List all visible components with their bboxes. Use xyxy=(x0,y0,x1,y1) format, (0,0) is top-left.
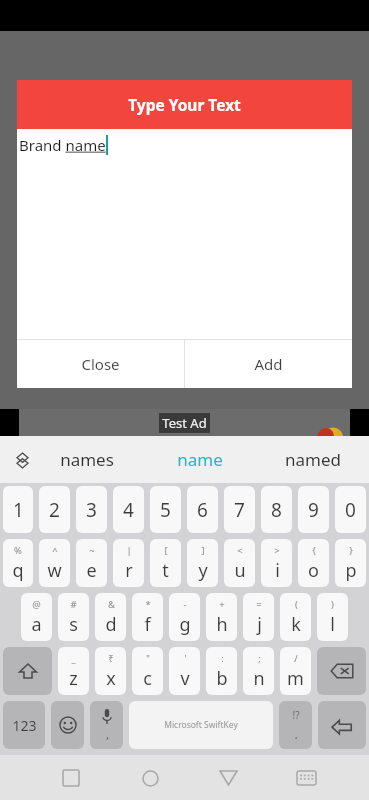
staticText: = xyxy=(256,598,262,611)
staticText: e xyxy=(86,558,97,583)
staticText: names xyxy=(60,448,114,471)
staticText: Add xyxy=(254,354,283,374)
button[interactable]: @ xyxy=(21,593,52,641)
button[interactable]: names xyxy=(30,436,143,483)
staticText: h xyxy=(216,612,228,637)
staticText: s xyxy=(69,612,78,637)
staticText: a xyxy=(31,612,42,637)
staticText: q xyxy=(12,558,24,583)
button[interactable]: _ xyxy=(58,647,89,695)
button[interactable]: Enter xyxy=(318,701,366,749)
button[interactable]: Expand suggestions xyxy=(9,447,35,473)
button[interactable]: + xyxy=(206,593,237,641)
button[interactable]: 9 xyxy=(298,486,329,533)
button[interactable]: ) xyxy=(317,593,348,641)
button[interactable]: named xyxy=(256,436,369,483)
staticText: n xyxy=(253,666,265,691)
button[interactable]: Test Ad xyxy=(0,409,369,436)
button[interactable]: name xyxy=(143,436,256,483)
button[interactable]: Recents xyxy=(49,756,93,800)
button[interactable]: Emoji xyxy=(51,701,84,749)
button[interactable]: Voice input xyxy=(90,701,123,749)
staticText: , xyxy=(106,727,109,742)
button[interactable]: 0 xyxy=(335,486,366,533)
button[interactable]: : xyxy=(206,647,237,695)
staticText: % xyxy=(14,544,22,557)
button[interactable]: { xyxy=(298,539,329,587)
button[interactable]: > xyxy=(261,539,292,587)
staticText: r xyxy=(125,558,133,583)
staticText: named xyxy=(285,448,341,471)
button[interactable]: ₹ xyxy=(95,647,126,695)
button[interactable]: 3 xyxy=(76,486,107,533)
button[interactable]: 7 xyxy=(224,486,255,533)
button[interactable]: ' xyxy=(169,647,200,695)
button[interactable]: 6 xyxy=(187,486,218,533)
button[interactable]: [ xyxy=(150,539,181,587)
button[interactable]: 4 xyxy=(113,486,144,533)
button[interactable]: !? xyxy=(279,701,312,749)
staticText: ' xyxy=(184,652,187,665)
staticText: ₹ xyxy=(108,652,114,665)
staticText: x xyxy=(106,666,116,691)
button[interactable]: 8 xyxy=(261,486,292,533)
staticText: 4 xyxy=(123,497,134,523)
button[interactable]: Backspace xyxy=(317,647,366,695)
button[interactable]: 1 xyxy=(3,486,33,533)
staticText: l xyxy=(330,612,335,637)
staticText: ( xyxy=(295,598,298,611)
staticText: } xyxy=(349,544,353,557)
button[interactable]: Home xyxy=(128,756,172,800)
button[interactable]: ; xyxy=(243,647,274,695)
button[interactable]: Back xyxy=(206,756,250,800)
staticText: Microsoft SwiftKey xyxy=(164,719,238,731)
button[interactable]: " xyxy=(132,647,163,695)
button[interactable]: Space xyxy=(129,701,273,749)
button[interactable]: Close xyxy=(17,340,184,388)
button[interactable]: Brand name xyxy=(17,129,352,339)
staticText: !? xyxy=(292,708,300,722)
staticText: [ xyxy=(164,544,168,557)
button[interactable]: 123 xyxy=(3,701,45,749)
staticText: d xyxy=(105,612,117,637)
staticText: _ xyxy=(71,652,76,665)
button[interactable]: | xyxy=(113,539,144,587)
button[interactable]: 5 xyxy=(150,486,181,533)
button[interactable]: ~ xyxy=(76,539,107,587)
button[interactable]: Add xyxy=(185,340,352,388)
staticText: 7 xyxy=(234,497,245,523)
staticText: i xyxy=(275,558,280,583)
staticText: Close xyxy=(81,354,120,374)
staticText: 9 xyxy=(308,497,319,523)
staticText: 0 xyxy=(345,497,356,523)
button[interactable]: < xyxy=(224,539,255,587)
staticText: f xyxy=(144,612,151,637)
button[interactable]: Hide keyboard xyxy=(284,756,328,800)
staticText: m xyxy=(287,666,304,691)
button[interactable]: = xyxy=(243,593,274,641)
button[interactable]: 2 xyxy=(39,486,70,533)
staticText: t xyxy=(162,558,169,583)
staticText: v xyxy=(180,666,190,691)
staticText: ; xyxy=(258,652,261,665)
staticText: # xyxy=(70,598,77,611)
button[interactable]: # xyxy=(58,593,89,641)
button[interactable]: - xyxy=(169,593,200,641)
staticText: ~ xyxy=(89,544,95,557)
staticText: j xyxy=(257,612,262,637)
staticText: { xyxy=(312,544,316,557)
button[interactable]: / xyxy=(280,647,311,695)
staticText: " xyxy=(146,652,150,665)
staticText: > xyxy=(274,544,280,557)
button[interactable]: % xyxy=(3,539,33,587)
button[interactable]: * xyxy=(132,593,163,641)
button[interactable]: ] xyxy=(187,539,218,587)
button[interactable]: & xyxy=(95,593,126,641)
button[interactable]: ^ xyxy=(39,539,70,587)
button[interactable]: Shift xyxy=(3,647,52,695)
staticText: w xyxy=(47,558,62,583)
button[interactable]: ( xyxy=(280,593,311,641)
button[interactable]: } xyxy=(335,539,366,587)
staticText: - xyxy=(183,598,187,611)
staticText: k xyxy=(291,612,301,637)
